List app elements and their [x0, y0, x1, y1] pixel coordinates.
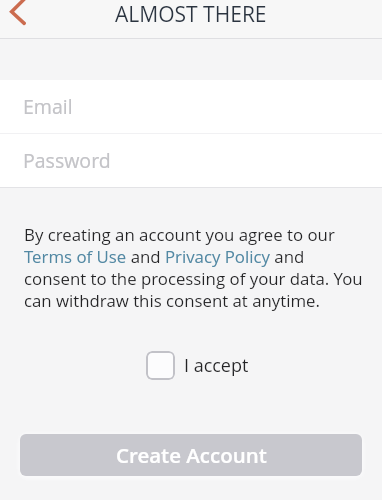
button[interactable]: Back: [0, 0, 46, 38]
staticText: By creating an account you agree to our …: [24, 223, 364, 312]
button[interactable]: I accept: [146, 351, 249, 380]
staticText: ALMOST THERE: [115, 0, 267, 27]
button[interactable]: Create Account: [20, 434, 362, 476]
staticText: I accept: [184, 353, 249, 378]
staticText: Email: [23, 93, 73, 120]
staticText: Password: [23, 147, 111, 174]
staticText: Create Account: [116, 441, 267, 469]
